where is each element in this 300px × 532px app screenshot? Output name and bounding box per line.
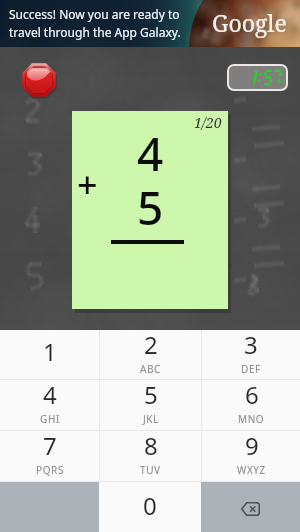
staticText: 6	[245, 378, 259, 411]
staticText: WXYZ	[237, 463, 266, 477]
button[interactable]: Success! Now you are ready to	[0, 0, 300, 47]
button[interactable]: 0	[99, 482, 201, 532]
staticText: PQRS	[36, 463, 64, 477]
button[interactable]: Stop	[20, 61, 58, 99]
staticText: 5	[137, 176, 164, 239]
staticText: 4	[137, 122, 164, 185]
staticText: ABC	[140, 362, 162, 376]
button[interactable]: 8	[100, 431, 201, 481]
staticText: Success! Now you are ready to	[9, 6, 180, 22]
staticText: GHI	[40, 412, 60, 426]
button[interactable]: 3	[202, 330, 300, 379]
staticText: 9	[245, 429, 259, 462]
staticText: DEF	[241, 362, 261, 376]
button[interactable]: 1/20	[72, 111, 228, 309]
button[interactable]: Backspace	[201, 482, 300, 532]
button[interactable]: 1	[0, 330, 99, 379]
staticText: 3	[244, 328, 258, 361]
button[interactable]: 5	[100, 380, 201, 430]
staticText: JKL	[143, 412, 159, 426]
staticText: TUV	[140, 463, 161, 477]
button[interactable]: 4	[0, 380, 99, 430]
staticText: 0	[143, 489, 157, 522]
button[interactable]: 2	[100, 330, 201, 379]
staticText: 7	[43, 429, 57, 462]
staticText: 1	[43, 335, 57, 368]
button[interactable]: 6	[202, 380, 300, 430]
staticText: 4	[43, 378, 57, 411]
staticText: travel through the App Galaxy.	[9, 24, 181, 40]
button[interactable]: 9	[202, 431, 300, 481]
staticText: MNO	[238, 412, 265, 426]
staticText: 1/20	[194, 113, 222, 132]
staticText: +	[77, 160, 98, 209]
staticText: 8	[144, 429, 158, 462]
button[interactable]	[227, 64, 288, 91]
staticText: 5	[144, 378, 158, 411]
staticText: Google	[212, 7, 287, 38]
staticText: 2	[144, 328, 158, 361]
button[interactable]: 7	[0, 431, 99, 481]
